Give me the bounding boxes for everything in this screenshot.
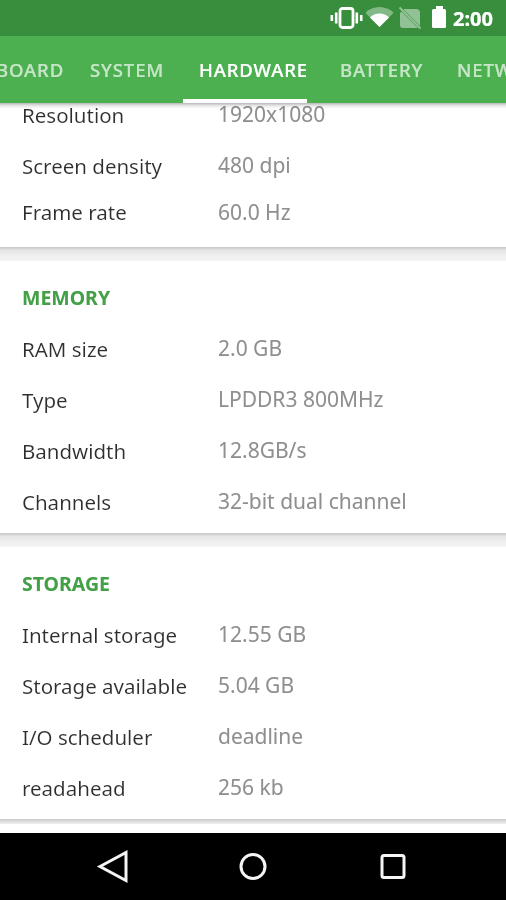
staticText: Type (22, 386, 68, 414)
staticText: LPDDR3 800MHz (218, 385, 384, 414)
staticText: Channels (22, 488, 112, 516)
staticText: 1920x1080 (218, 100, 326, 129)
button[interactable] (337, 833, 506, 900)
button[interactable]: readahead (0, 762, 506, 813)
staticText: 60.0 Hz (218, 198, 291, 227)
staticText: MEMORY (22, 284, 111, 311)
staticText: Frame rate (22, 198, 127, 226)
staticText: STORAGE (22, 570, 110, 597)
button[interactable]: BATTERY (340, 36, 424, 103)
staticText: 12.8GB/s (218, 436, 307, 465)
button[interactable]: Storage available (0, 660, 506, 711)
staticText: Bandwidth (22, 437, 127, 465)
button[interactable]: RAM size (0, 323, 506, 374)
button[interactable]: Internal storage (0, 609, 506, 660)
staticText: Storage available (22, 672, 188, 700)
button[interactable]: BOARD (0, 36, 65, 103)
staticText: 5.04 GB (218, 671, 295, 700)
staticText: deadline (218, 722, 304, 751)
button[interactable]: Type (0, 374, 506, 425)
button[interactable]: Bandwidth (0, 425, 506, 476)
button[interactable]: I/O scheduler (0, 711, 506, 762)
button[interactable]: Channels (0, 476, 506, 527)
staticText: BOARD (0, 57, 65, 82)
staticText: SYSTEM (90, 57, 165, 82)
staticText: RAM size (22, 335, 109, 363)
button[interactable]: NETWORK (457, 36, 506, 103)
staticText: 2.0 GB (218, 334, 283, 363)
staticText: HARDWARE (199, 57, 308, 82)
button[interactable]: Screen density (0, 140, 506, 191)
staticText: 32-bit dual channel (218, 487, 407, 516)
staticText: NETWORK (457, 57, 506, 82)
staticText: I/O scheduler (22, 723, 153, 751)
button[interactable]: Frame rate (0, 191, 506, 233)
staticText: Internal storage (22, 621, 178, 649)
staticText: 12.55 GB (218, 620, 307, 649)
button[interactable]: HARDWARE (199, 36, 308, 103)
button[interactable] (0, 833, 168, 900)
staticText: 2:00 (453, 5, 493, 32)
staticText: 256 kb (218, 773, 284, 802)
button[interactable] (168, 833, 337, 900)
staticText: Screen density (22, 152, 163, 180)
staticText: BATTERY (340, 57, 424, 82)
button[interactable]: SYSTEM (90, 36, 165, 103)
staticText: Resolution (22, 101, 125, 129)
staticText: readahead (22, 774, 126, 802)
staticText: 480 dpi (218, 151, 291, 180)
button[interactable]: Resolution (0, 89, 506, 140)
